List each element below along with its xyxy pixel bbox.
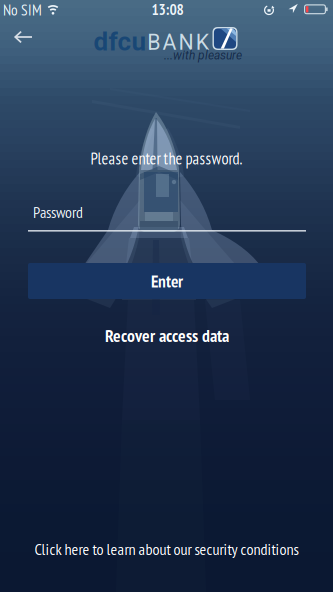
staticText: Password (33, 202, 83, 222)
staticText: Click here to learn about our security c… (34, 538, 298, 559)
staticText: dfcu (93, 26, 146, 57)
button[interactable]: Password (28, 196, 306, 232)
staticText: Please enter the password. (90, 148, 242, 169)
button[interactable]: Recover access data (97, 316, 237, 355)
button[interactable]: Back (4, 21, 42, 53)
staticText: No SIM (3, 0, 42, 20)
staticText: A (162, 30, 176, 55)
staticText: K (196, 30, 209, 55)
staticText: ...with pleasure (164, 48, 242, 63)
staticText: B (147, 30, 160, 55)
staticText: N (179, 30, 194, 55)
button[interactable]: Enter (28, 263, 306, 299)
staticText: Enter (151, 270, 183, 292)
staticText: Recover access data (105, 324, 229, 347)
button[interactable]: Click here to learn about our security c… (28, 532, 304, 565)
staticText: 13:08 (151, 0, 183, 19)
